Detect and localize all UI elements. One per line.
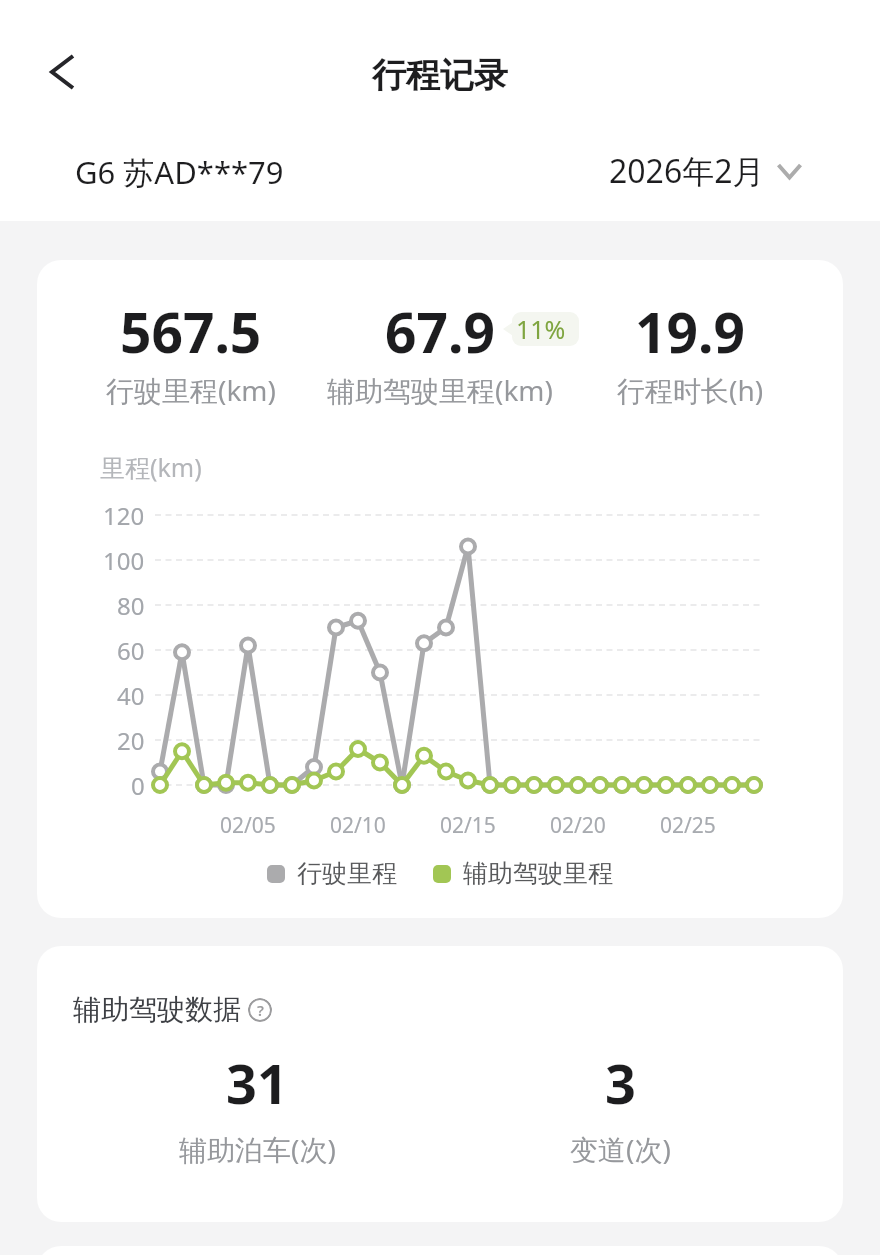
- staticText: 辅助驾驶里程(km): [327, 371, 553, 409]
- staticText: 行程时长(h): [617, 371, 764, 409]
- staticText: ?: [257, 1000, 264, 1020]
- staticText: 辅助泊车(次): [179, 1130, 336, 1168]
- button[interactable]: 2026年2月: [609, 149, 802, 193]
- staticText: 19.9: [635, 294, 745, 369]
- staticText: 行驶里程(km): [106, 371, 276, 409]
- button[interactable]: ?: [248, 998, 272, 1022]
- staticText: 变道(次): [570, 1130, 671, 1168]
- staticText: 辅助驾驶数据: [73, 992, 241, 1027]
- staticText: 02/05: [220, 811, 276, 840]
- staticText: 0: [131, 769, 145, 802]
- staticText: 02/20: [550, 811, 606, 840]
- staticText: 67.9: [385, 294, 495, 369]
- staticText: 02/15: [440, 811, 496, 840]
- button[interactable]: [30, 40, 94, 104]
- staticText: 567.5: [120, 294, 262, 369]
- staticText: 行驶里程: [297, 858, 397, 889]
- staticText: 02/10: [330, 811, 386, 840]
- staticText: 80: [117, 589, 145, 622]
- staticText: 11%: [516, 312, 566, 346]
- staticText: 40: [117, 679, 145, 712]
- staticText: 60: [117, 634, 145, 667]
- staticText: G6 苏AD***79: [75, 151, 284, 193]
- staticText: 120: [103, 499, 145, 532]
- staticText: 20: [117, 724, 145, 757]
- staticText: 3: [605, 1046, 636, 1120]
- staticText: 里程(km): [100, 450, 202, 484]
- staticText: 31: [226, 1046, 288, 1120]
- staticText: 2026年2月: [609, 149, 765, 193]
- staticText: 行程记录: [372, 54, 508, 97]
- staticText: 辅助驾驶里程: [463, 858, 613, 889]
- staticText: 100: [103, 544, 145, 577]
- staticText: 02/25: [660, 811, 716, 840]
